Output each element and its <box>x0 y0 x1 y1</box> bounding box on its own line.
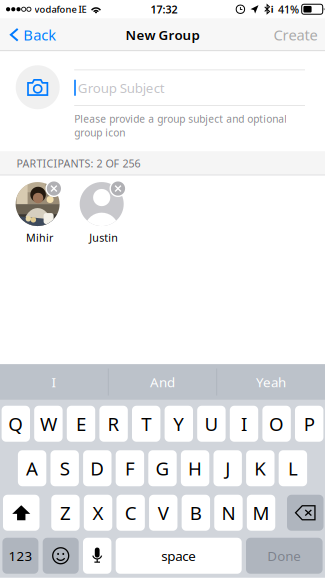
button[interactable]: H <box>181 450 209 486</box>
button[interactable]: M <box>247 495 275 531</box>
staticText: C <box>125 500 137 525</box>
staticText: H <box>188 456 202 481</box>
button[interactable]: D <box>83 450 111 486</box>
button[interactable]: Q <box>2 406 30 442</box>
staticText: U <box>204 411 218 436</box>
staticText: B <box>190 500 202 525</box>
staticText: D <box>90 456 104 481</box>
staticText: E <box>76 411 86 436</box>
button[interactable]: L <box>279 450 307 486</box>
staticText: Done <box>267 547 301 565</box>
button[interactable]: Create <box>274 19 325 50</box>
button[interactable]: Dictate <box>83 538 111 574</box>
staticText: I <box>51 373 56 391</box>
staticText: space <box>161 547 196 565</box>
staticText: 17:32 <box>150 2 177 16</box>
button[interactable]: Shift <box>3 495 39 531</box>
button[interactable]: R <box>99 406 128 442</box>
button[interactable]: Add group icon <box>16 65 60 109</box>
staticText: And <box>150 373 175 391</box>
button[interactable]: Emoji keyboard <box>43 538 79 574</box>
staticText: P <box>304 411 315 436</box>
button[interactable]: A <box>18 450 46 486</box>
button[interactable]: B <box>182 495 210 531</box>
button[interactable]: I <box>230 406 258 442</box>
staticText: J <box>225 456 230 481</box>
staticText: V <box>158 500 169 525</box>
staticText: New Group <box>125 26 199 44</box>
staticText: R <box>108 411 120 436</box>
staticText: K <box>254 456 266 481</box>
staticText: Group Subject <box>78 79 165 97</box>
button[interactable]: X <box>84 495 112 531</box>
staticText: PARTICIPANTS: 2 OF 256 <box>17 156 141 170</box>
staticText: I <box>241 411 247 436</box>
staticText: T <box>141 411 151 436</box>
button[interactable]: Mihir <box>16 180 64 245</box>
staticText: W <box>40 411 57 436</box>
button[interactable]: N <box>214 495 243 531</box>
button[interactable]: 123 <box>2 538 38 574</box>
staticText: Z <box>60 500 71 525</box>
staticText: N <box>221 500 235 525</box>
staticText: F <box>125 456 135 481</box>
staticText: O <box>269 411 284 436</box>
button[interactable]: I <box>0 364 108 400</box>
staticText: Y <box>173 411 184 436</box>
staticText: i <box>271 3 274 15</box>
button[interactable]: And <box>109 364 216 400</box>
staticText: Yeah <box>256 373 286 391</box>
button[interactable]: K <box>246 450 274 486</box>
button[interactable]: G <box>148 450 177 486</box>
button[interactable]: Justin <box>80 180 128 245</box>
staticText: A <box>26 456 38 481</box>
staticText: Q <box>8 411 23 436</box>
button[interactable]: J <box>213 450 242 486</box>
button[interactable]: E <box>67 406 95 442</box>
staticText: Justin <box>89 231 118 245</box>
staticText: 123 <box>8 547 32 565</box>
staticText: L <box>288 456 298 481</box>
button[interactable]: Y <box>165 406 193 442</box>
staticText: Create <box>274 25 318 44</box>
button[interactable]: U <box>197 406 226 442</box>
staticText: Mihir <box>26 231 53 245</box>
button[interactable]: Z <box>51 495 80 531</box>
button[interactable]: S <box>50 450 79 486</box>
button[interactable]: Done <box>246 538 323 574</box>
staticText: Please provide a group subject and optio… <box>74 112 287 140</box>
staticText: S <box>60 456 70 481</box>
staticText: X <box>92 500 103 525</box>
button[interactable]: space <box>116 538 242 574</box>
button[interactable]: T <box>132 406 160 442</box>
button[interactable]: F <box>116 450 144 486</box>
button[interactable]: P <box>295 406 323 442</box>
button[interactable]: V <box>149 495 177 531</box>
button[interactable]: Back <box>0 19 56 50</box>
button[interactable]: Yeah <box>217 364 325 400</box>
staticText: 41% <box>278 2 299 16</box>
button[interactable]: O <box>262 406 291 442</box>
button[interactable]: C <box>116 495 145 531</box>
button[interactable]: Delete <box>287 495 323 531</box>
button[interactable]: W <box>34 406 63 442</box>
staticText: G <box>155 456 169 481</box>
staticText: vodafone IE <box>34 3 86 15</box>
staticText: M <box>252 500 269 525</box>
staticText: Back <box>23 25 56 44</box>
